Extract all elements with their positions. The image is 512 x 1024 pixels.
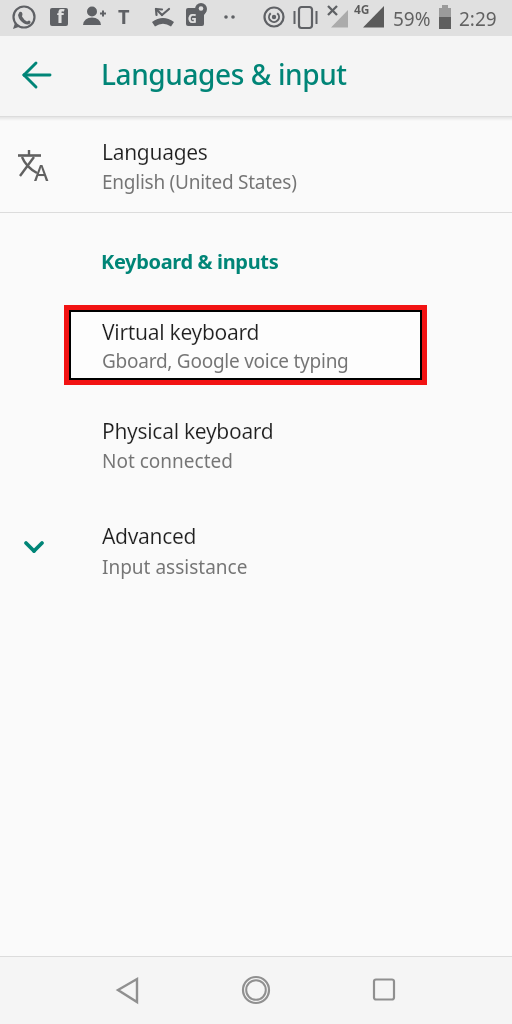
staticText: English (United States) xyxy=(102,169,297,195)
staticText: 2:29 xyxy=(459,6,497,32)
button[interactable]: Advanced xyxy=(0,510,512,590)
staticText: Input assistance xyxy=(102,554,248,580)
staticText: Gboard, Google voice typing xyxy=(102,348,349,374)
staticText: Not connected xyxy=(102,448,233,474)
button[interactable]: A xyxy=(0,117,512,212)
staticText: Advanced xyxy=(102,522,197,551)
staticText: Languages xyxy=(102,138,208,167)
button[interactable] xyxy=(236,970,276,1010)
button[interactable] xyxy=(108,970,148,1010)
button[interactable] xyxy=(0,36,56,92)
staticText: A xyxy=(34,157,49,187)
staticText: Keyboard & inputs xyxy=(101,248,279,275)
staticText: G xyxy=(188,10,197,26)
staticText: f xyxy=(57,5,64,28)
button[interactable] xyxy=(364,970,404,1010)
button[interactable]: Virtual keyboard xyxy=(64,305,427,385)
staticText: Virtual keyboard xyxy=(102,318,260,347)
button[interactable]: Physical keyboard xyxy=(0,407,512,487)
staticText: 59% xyxy=(393,6,431,32)
staticText: 4G xyxy=(354,1,370,17)
staticText: Physical keyboard xyxy=(102,417,274,446)
staticText: T xyxy=(118,3,130,30)
staticText: Languages & input xyxy=(101,55,347,93)
